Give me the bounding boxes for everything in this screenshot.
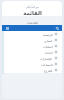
button[interactable]: الإعداد [4,49,62,55]
staticText: الإشعارات [40,57,53,60]
button[interactable]: Search [55,26,59,30]
staticText: القائمة [23,10,42,16]
button[interactable]: الرئيسية [4,31,62,37]
button[interactable]: المساعدة [4,61,62,67]
staticText: الخروج [44,69,53,72]
staticText: الطلبات [43,45,53,48]
staticText: حسابي [44,39,53,42]
staticText: الرئيسية [43,33,53,36]
button[interactable]: حسابي [4,37,62,43]
staticText: مرحباً بكم [26,5,39,9]
staticText: المساعدة [41,63,53,66]
button[interactable]: الطلبات [4,43,62,49]
button[interactable]: الإشعارات [4,55,62,61]
button[interactable]: الخروج [4,67,62,73]
staticText: الإعداد [45,51,53,54]
staticText: الخدمات [27,21,38,24]
button[interactable]: Menu [5,26,9,30]
